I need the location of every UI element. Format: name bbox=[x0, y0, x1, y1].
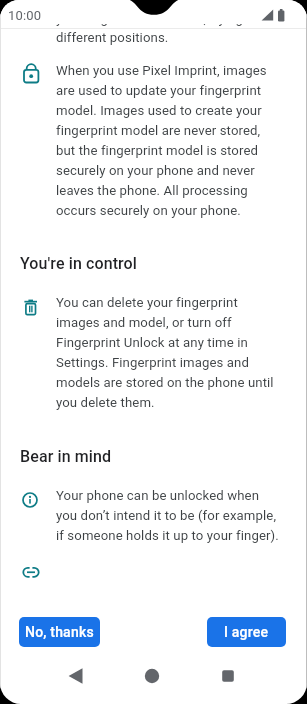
button[interactable] bbox=[138, 662, 166, 690]
staticText: Bear in mind bbox=[20, 447, 112, 466]
staticText: your finger on the sensor, trying bbox=[56, 11, 244, 26]
button[interactable] bbox=[62, 662, 90, 690]
button[interactable] bbox=[214, 662, 242, 690]
staticText: When you use Pixel Imprint, images are u… bbox=[56, 63, 300, 218]
staticText: You can delete your fingerprint images a… bbox=[56, 295, 300, 410]
button[interactable]: No, thanks bbox=[19, 617, 100, 647]
staticText: You're in control bbox=[20, 254, 137, 273]
staticText: 10:00 bbox=[8, 8, 42, 23]
button[interactable] bbox=[20, 562, 42, 582]
staticText: No, thanks bbox=[25, 624, 94, 640]
staticText: Your phone can be unlocked when you don’… bbox=[56, 488, 306, 543]
staticText: different positions. bbox=[56, 30, 169, 45]
staticText: I agree bbox=[224, 624, 269, 640]
button[interactable]: I agree bbox=[207, 617, 286, 647]
